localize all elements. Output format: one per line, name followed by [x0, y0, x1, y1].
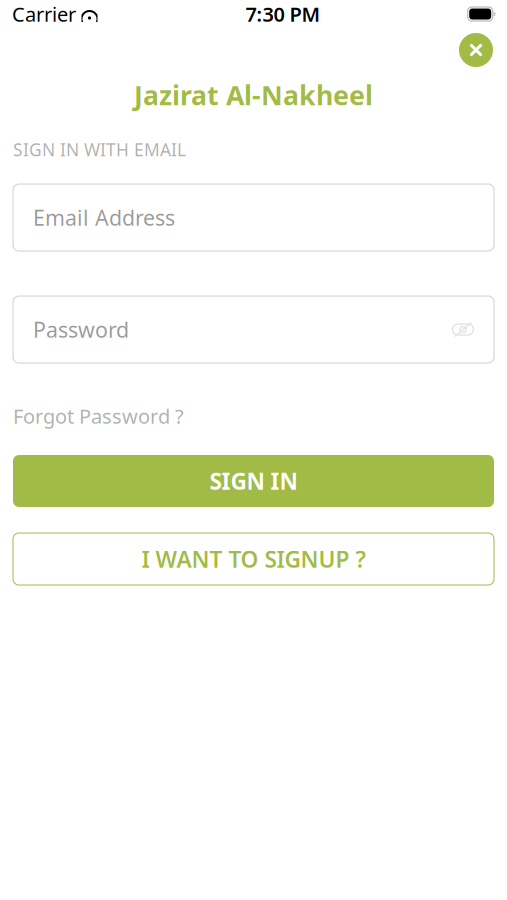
staticText: Email Address — [33, 203, 175, 232]
button[interactable]: SIGN IN — [13, 455, 494, 507]
button[interactable]: Password — [13, 296, 494, 363]
button[interactable]: Email Address — [13, 184, 494, 251]
staticText — [76, 1, 81, 27]
staticText: Carrier — [12, 1, 76, 27]
staticText: Password — [33, 315, 129, 344]
staticText: SIGN IN WITH EMAIL — [13, 138, 186, 161]
staticText: SIGN IN — [209, 466, 297, 496]
staticText: Forgot Password ? — [13, 403, 184, 429]
button[interactable]: Forgot Password ? — [13, 403, 184, 429]
button[interactable]: I WANT TO SIGNUP ? — [13, 533, 494, 585]
staticText: 7:30 PM — [245, 1, 320, 27]
button[interactable]: Close — [454, 28, 498, 72]
staticText: I WANT TO SIGNUP ? — [141, 544, 365, 574]
staticText: Jazirat Al-Nakheel — [134, 77, 373, 113]
